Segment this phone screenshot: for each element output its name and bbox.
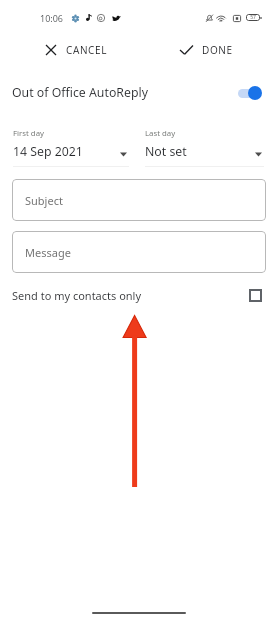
button[interactable]: Message xyxy=(12,231,266,273)
staticText: Subject xyxy=(25,193,63,208)
staticText: First day xyxy=(13,128,44,139)
button[interactable]: Subject xyxy=(12,179,266,221)
staticText: CANCEL xyxy=(66,43,108,57)
button[interactable]: Send to my contacts only xyxy=(0,282,279,308)
button[interactable]: DONE xyxy=(140,32,279,68)
button[interactable]: Last day xyxy=(145,124,264,167)
button[interactable]: Out of Office AutoReply xyxy=(0,76,279,109)
staticText: Out of Office AutoReply xyxy=(12,84,148,101)
staticText: Not set xyxy=(145,143,187,160)
staticText: 10:06 xyxy=(40,12,64,24)
button[interactable]: First day xyxy=(13,124,129,167)
button[interactable]: CANCEL xyxy=(0,32,140,68)
staticText: Last day xyxy=(145,128,176,139)
staticText: 14 Sep 2021 xyxy=(13,143,83,160)
staticText: DONE xyxy=(202,43,233,57)
staticText: Send to my contacts only xyxy=(12,288,142,303)
staticText: Message xyxy=(25,245,71,260)
staticText: 57 xyxy=(250,14,256,21)
